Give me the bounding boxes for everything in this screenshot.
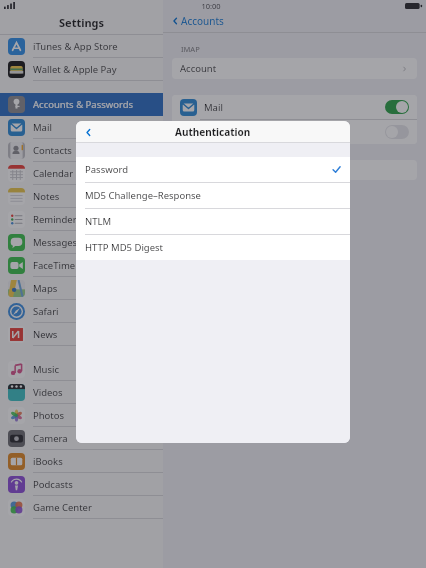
button[interactable]: Contacts xyxy=(0,139,163,162)
button[interactable]: Messages xyxy=(0,231,163,254)
staticText: Settings xyxy=(59,15,105,30)
button[interactable]: Notes xyxy=(172,120,417,144)
button[interactable]: News xyxy=(0,323,163,346)
staticText: Photos xyxy=(33,409,65,422)
button[interactable]: Password xyxy=(76,157,350,182)
staticText: iBooks xyxy=(33,455,63,468)
staticText: NTLM xyxy=(85,215,112,228)
staticText: Accounts & Passwords xyxy=(33,98,134,111)
staticText: Camera xyxy=(33,432,68,445)
staticText: Calendar xyxy=(33,167,74,180)
button[interactable] xyxy=(385,125,409,139)
button[interactable]: Game Center xyxy=(0,496,163,519)
button[interactable] xyxy=(385,100,409,114)
staticText: Authentication xyxy=(175,125,251,139)
button[interactable]: Videos xyxy=(0,381,163,404)
button[interactable]: Podcasts xyxy=(0,473,163,496)
button[interactable]: Maps xyxy=(0,277,163,300)
staticText: Notes xyxy=(204,126,231,139)
staticText: Videos xyxy=(33,386,63,399)
button[interactable]: iTunes & App Store xyxy=(0,35,163,58)
button[interactable]: Wallet & Apple Pay xyxy=(0,58,163,81)
button[interactable]: Mail xyxy=(172,95,417,119)
staticText: iTunes & App Store xyxy=(33,40,118,53)
staticText: Password xyxy=(85,163,128,176)
staticText: Messages xyxy=(33,236,78,249)
button[interactable]: NTLM xyxy=(76,209,350,234)
staticText: Podcasts xyxy=(33,478,73,491)
button[interactable]: Safari xyxy=(0,300,163,323)
staticText: News xyxy=(33,328,58,341)
button[interactable]: Notes xyxy=(0,185,163,208)
button[interactable]: Reminders xyxy=(0,208,163,231)
button[interactable]: Accounts & Passwords xyxy=(0,93,163,116)
staticText: Accounts xyxy=(181,14,224,28)
button[interactable]: Photos xyxy=(0,404,163,427)
staticText: Account xyxy=(180,62,217,75)
button[interactable]: Music xyxy=(0,358,163,381)
staticText: Mail xyxy=(33,121,52,134)
staticText: FaceTime xyxy=(33,259,76,272)
staticText: Safari xyxy=(33,305,59,318)
button[interactable]: Account xyxy=(172,58,417,79)
staticText: Maps xyxy=(33,282,58,295)
staticText: Reminders xyxy=(33,213,82,226)
button[interactable]: Accounts xyxy=(163,10,426,32)
staticText: Mail xyxy=(204,101,223,114)
button[interactable]: Calendar xyxy=(0,162,163,185)
button[interactable]: Back xyxy=(76,121,104,143)
staticText: 10:00 xyxy=(201,1,221,11)
button[interactable]: FaceTime xyxy=(0,254,163,277)
staticText: IMAP xyxy=(181,44,200,54)
staticText: MD5 Challenge–Response xyxy=(85,189,201,202)
staticText: Wallet & Apple Pay xyxy=(33,63,117,76)
button[interactable] xyxy=(172,160,417,180)
button[interactable]: iBooks xyxy=(0,450,163,473)
staticText: Music xyxy=(33,363,60,376)
staticText: HTTP MD5 Digest xyxy=(85,241,164,254)
button[interactable]: Camera xyxy=(0,427,163,450)
button[interactable]: MD5 Challenge–Response xyxy=(76,183,350,208)
staticText: Notes xyxy=(33,190,60,203)
button[interactable]: HTTP MD5 Digest xyxy=(76,235,350,260)
button[interactable]: Mail xyxy=(0,116,163,139)
staticText: Contacts xyxy=(33,144,72,157)
staticText: Game Center xyxy=(33,501,92,514)
